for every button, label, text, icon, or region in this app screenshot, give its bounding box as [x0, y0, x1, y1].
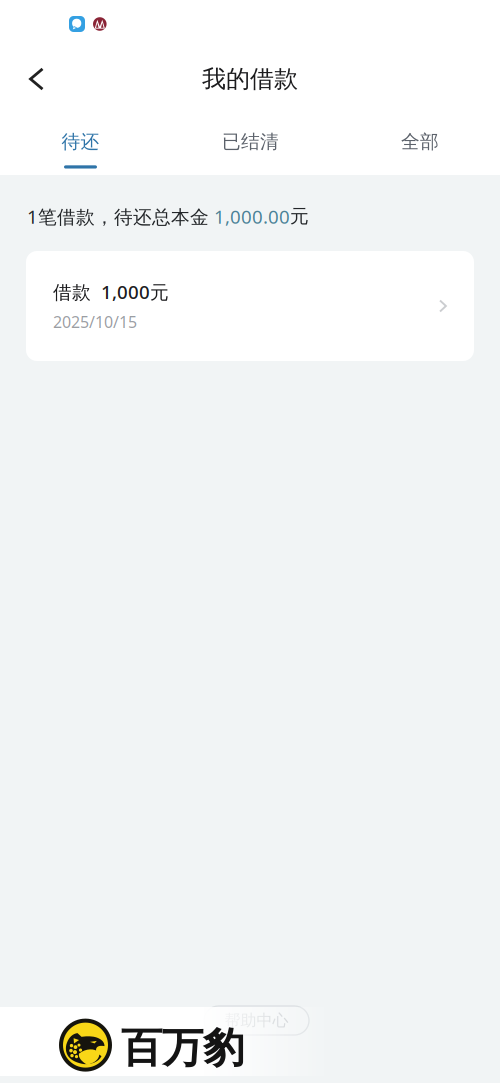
staticText: 已结清 [222, 130, 279, 153]
staticText: 帮助中心 [224, 1011, 288, 1030]
button[interactable]: 全部 [340, 110, 500, 175]
staticText: 1笔借款，待还总本金 [27, 204, 209, 229]
staticText: 2025/10/15 [53, 311, 137, 332]
button[interactable]: 待还 [0, 110, 161, 175]
button[interactable]: 已结清 [161, 110, 340, 175]
button[interactable]: 返回 [0, 48, 53, 110]
staticText: 元 [290, 205, 309, 228]
staticText: 全部 [401, 130, 439, 153]
staticText: 百万豹 [121, 1023, 244, 1073]
staticText: 1,000.00 [209, 204, 290, 229]
staticText: 借款 1,000元 [53, 279, 169, 304]
button[interactable]: 帮助中心 [204, 1006, 309, 1035]
staticText: 我的借款 [202, 64, 298, 94]
button[interactable]: 借款 1,000元 [26, 251, 474, 361]
staticText: 待还 [61, 130, 99, 153]
